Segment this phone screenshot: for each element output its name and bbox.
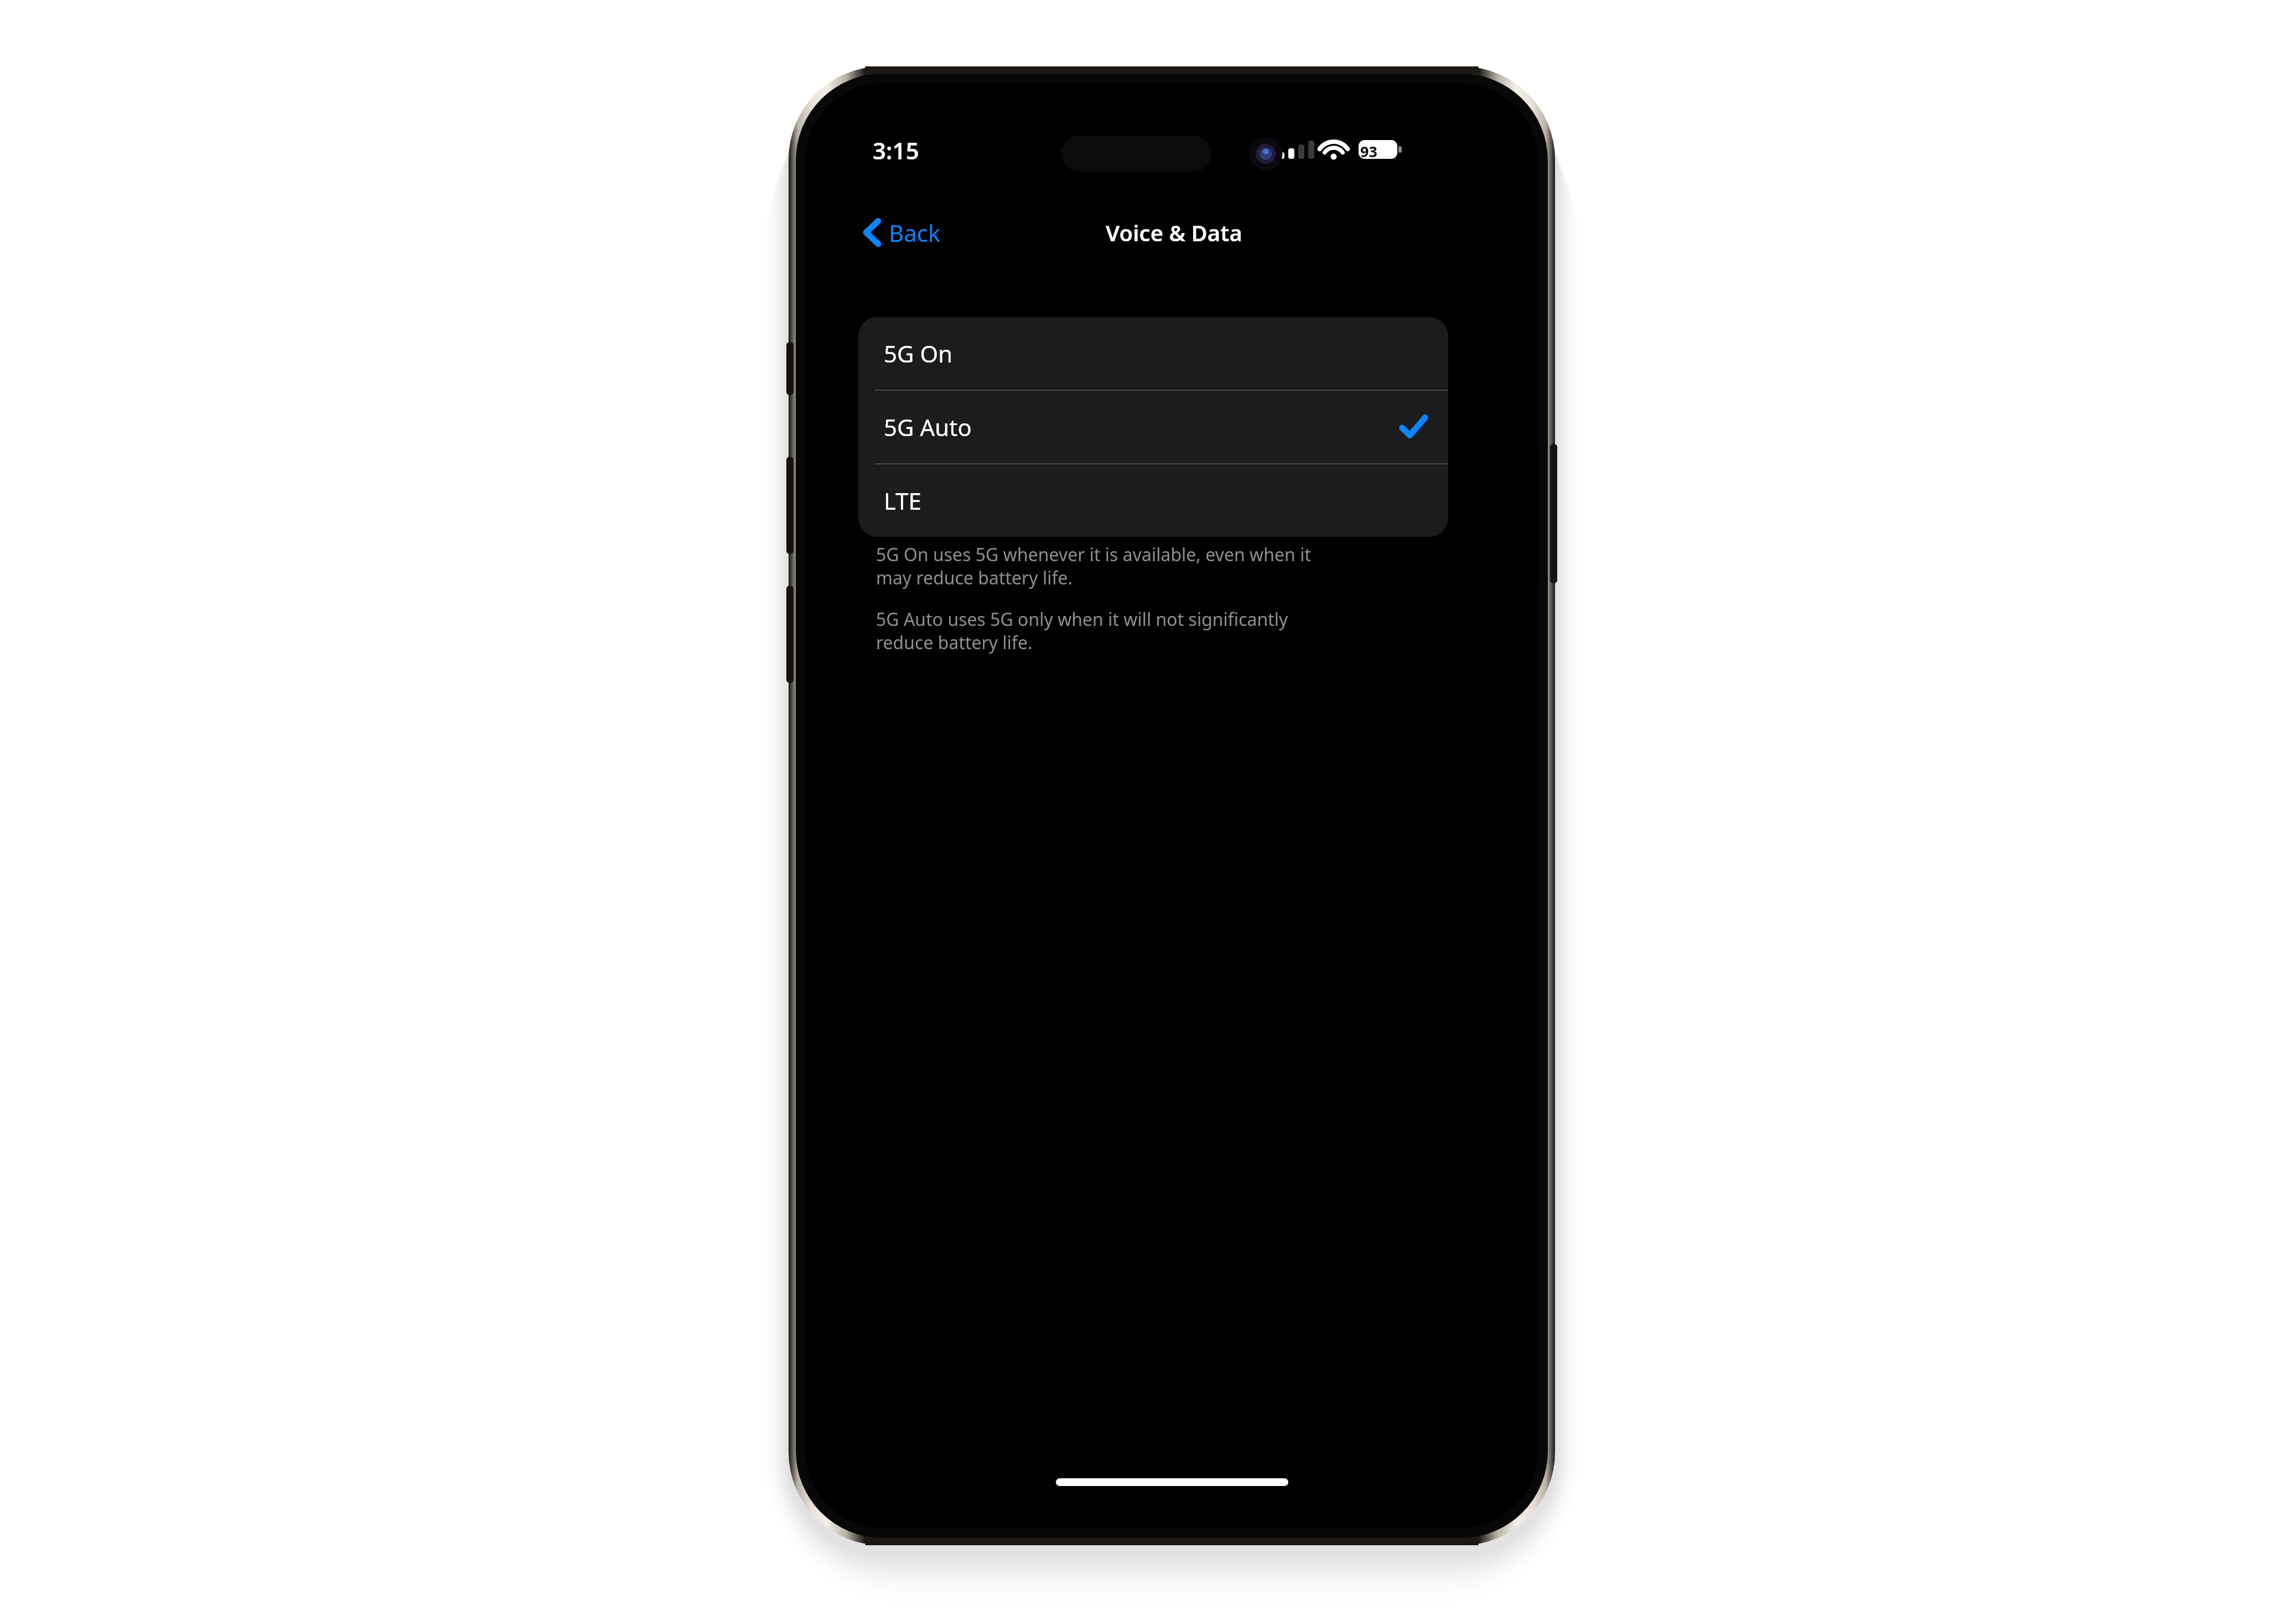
button[interactable]: Back [855, 202, 949, 263]
button[interactable]: 5G On [858, 317, 1448, 390]
staticText: Voice & Data [1106, 218, 1242, 247]
button[interactable]: 5G Auto [858, 391, 1448, 463]
staticText: 5G Auto [884, 411, 972, 443]
staticText: 5G Auto uses 5G only when it will not si… [876, 607, 1288, 654]
other: Selected [1401, 415, 1426, 440]
button[interactable]: LTE [858, 464, 1448, 537]
staticText: 5G On uses 5G whenever it is available, … [876, 542, 1311, 589]
staticText: LTE [884, 485, 921, 516]
staticText: 93 [1360, 141, 1377, 162]
staticText: 5G On [884, 338, 953, 369]
staticText: Back [889, 217, 941, 249]
staticText: 3:15 [873, 134, 919, 166]
